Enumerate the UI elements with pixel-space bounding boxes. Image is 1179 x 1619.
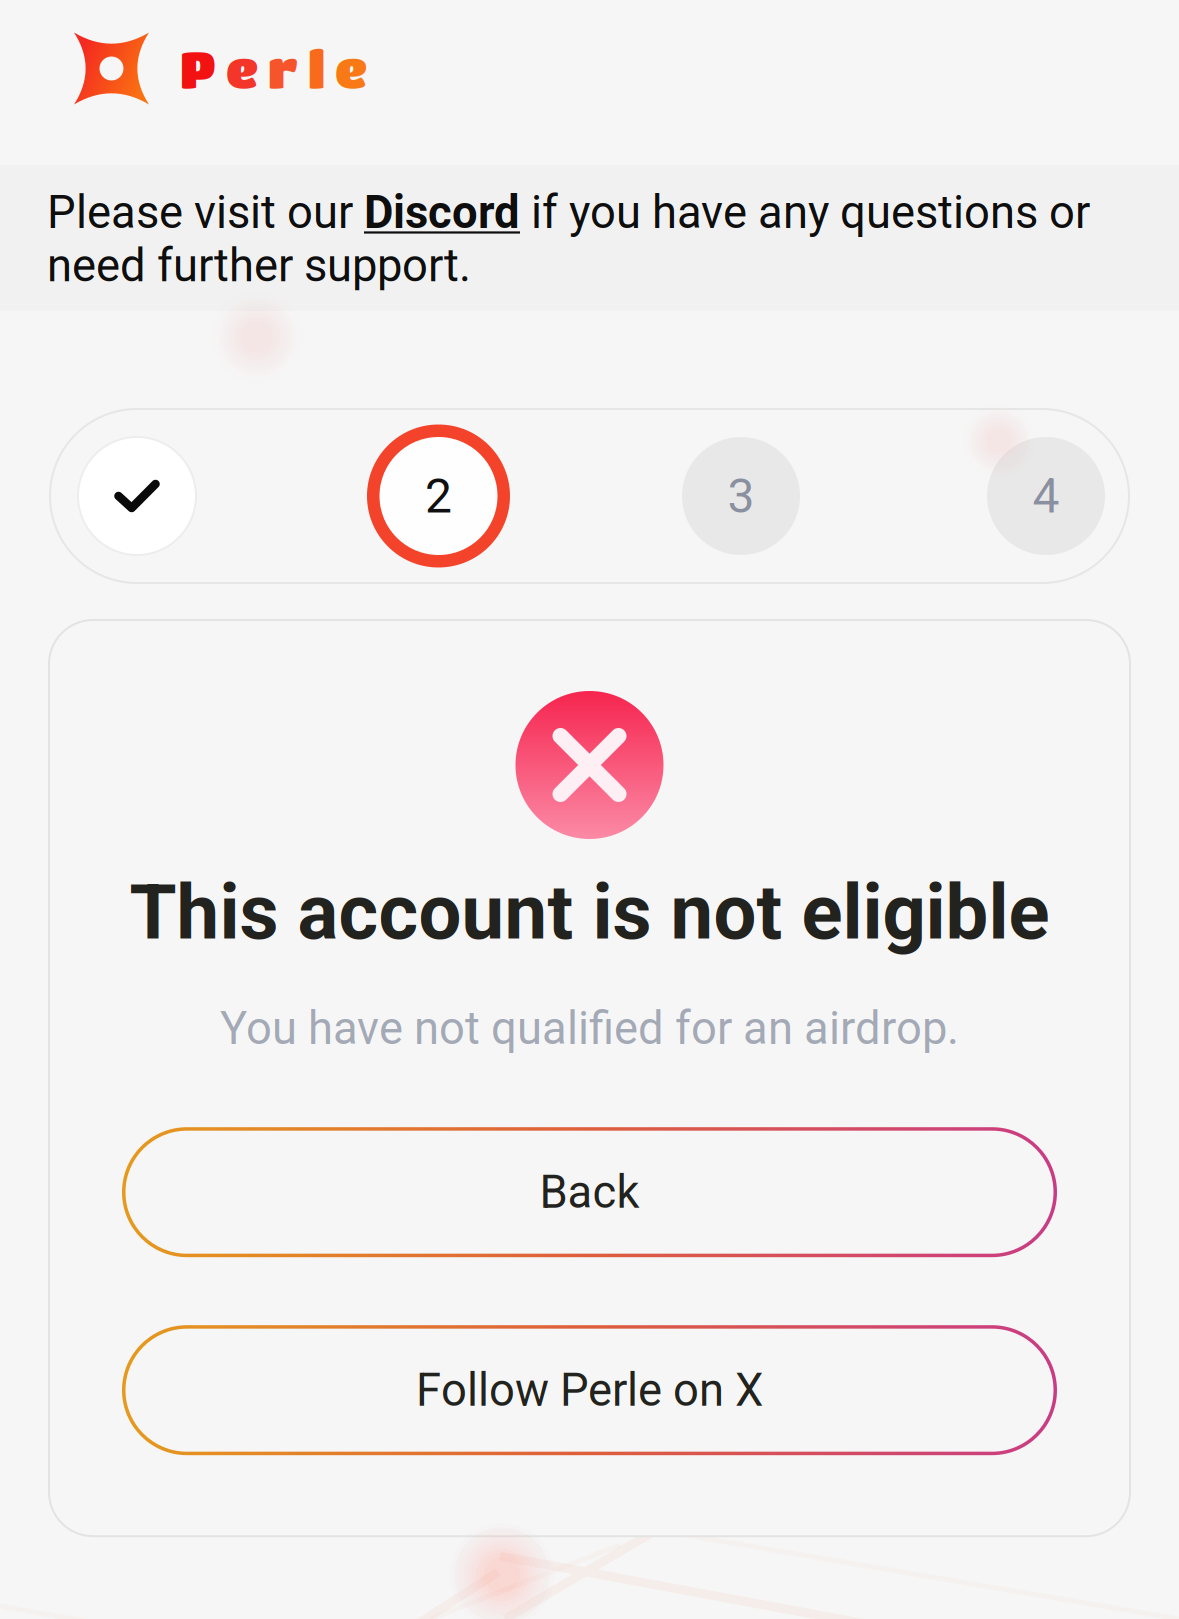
staticText: e [335,39,367,97]
staticText: Follow Perle on X [416,1364,763,1417]
staticText: 2 [425,468,452,524]
button[interactable]: Step 2, current [367,424,510,567]
button[interactable]: Follow Perle on X [122,1325,1057,1455]
staticText: Back [539,1166,639,1219]
staticText: This account is not eligible [129,868,1049,957]
button[interactable]: Back [122,1127,1057,1257]
staticText: e [226,39,258,97]
staticText: l [308,39,325,97]
staticText: 4 [1032,468,1059,524]
staticText: P [180,39,216,97]
staticText: r [268,39,298,97]
staticText: 3 [727,468,754,524]
button[interactable]: Step 1, complete [78,437,196,555]
staticText: You have not qualified for an airdrop. [220,1002,959,1055]
button[interactable]: Step 3 [682,437,800,555]
button[interactable]: Step 4 [987,437,1105,555]
staticText: Please visit our Discord if you have any… [47,186,1090,292]
